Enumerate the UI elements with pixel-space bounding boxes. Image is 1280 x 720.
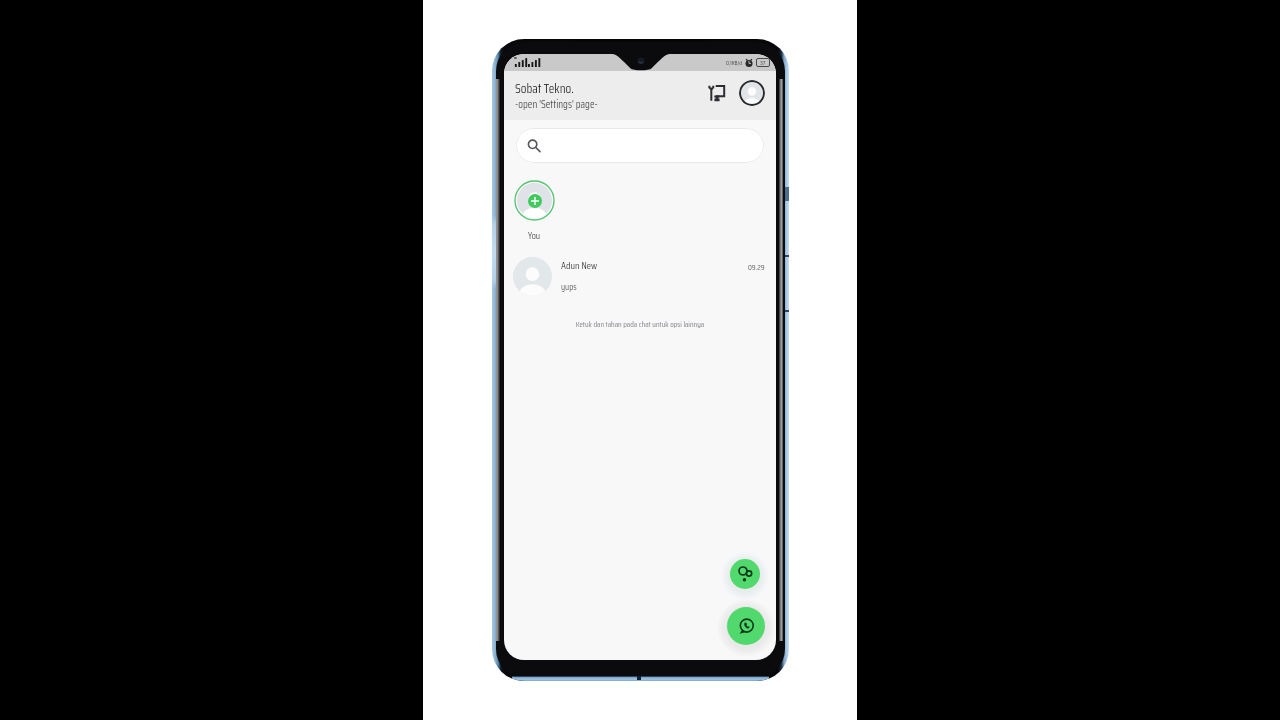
staticText: Adun New	[561, 258, 597, 274]
button[interactable]: New chat	[727, 607, 765, 645]
staticText: -open 'Settings' page-	[515, 96, 598, 113]
button[interactable]: Status updates	[730, 559, 760, 589]
button[interactable]: Search	[516, 128, 764, 163]
button[interactable]: Profile	[739, 80, 765, 106]
button[interactable]: Adun New	[504, 252, 776, 300]
staticText: yups	[561, 280, 577, 294]
button[interactable]: Link a device	[706, 82, 728, 104]
button[interactable]: My status	[514, 180, 555, 221]
staticText: 09.29	[748, 261, 765, 274]
staticText: 37	[760, 58, 766, 67]
staticText: Ketuk dan tahan pada chat untuk opsi lai…	[504, 318, 776, 331]
staticText: 0,1KB/d	[726, 58, 742, 67]
staticText: You	[528, 228, 541, 243]
staticText: Sobat Tekno.	[515, 78, 574, 98]
